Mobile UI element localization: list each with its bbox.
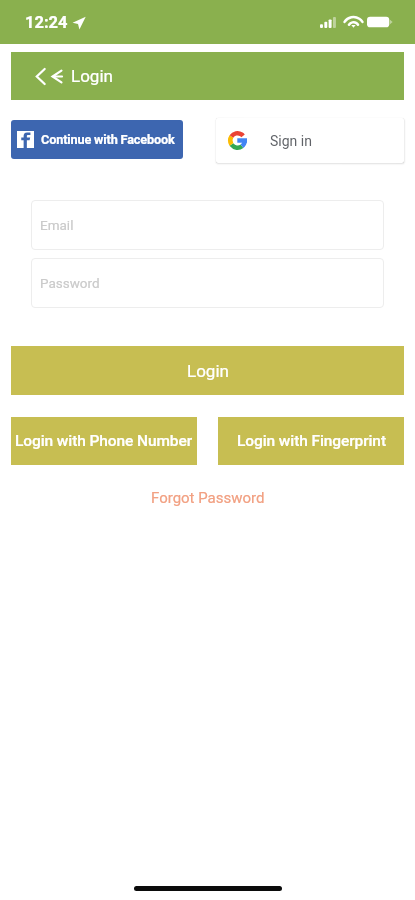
staticText: Password: [40, 275, 100, 291]
other: Back: [35, 68, 46, 85]
button[interactable]: Continue with Facebook: [11, 120, 183, 159]
staticText: Login: [71, 66, 113, 86]
button[interactable]: Sign in: [216, 118, 404, 163]
staticText: Continue with Facebook: [41, 132, 175, 147]
button[interactable]: Back: [11, 52, 404, 100]
staticText: Login: [187, 361, 229, 381]
button[interactable]: Login with Fingerprint: [218, 417, 404, 465]
staticText: Email: [40, 217, 74, 233]
button[interactable]: Password: [31, 258, 384, 308]
button[interactable]: Forgot Password: [151, 489, 265, 507]
staticText: Sign in: [270, 133, 312, 149]
staticText: 12:24: [25, 13, 68, 32]
staticText: Login with Fingerprint: [237, 432, 386, 450]
button[interactable]: Login: [11, 346, 404, 395]
button[interactable]: Login with Phone Number: [11, 417, 197, 465]
staticText: Login with Phone Number: [15, 432, 193, 450]
button[interactable]: Email: [31, 200, 384, 250]
